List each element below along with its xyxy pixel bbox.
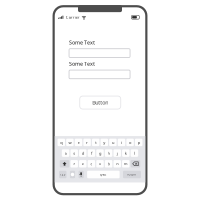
button[interactable]: b	[105, 160, 112, 168]
button[interactable]: Dictate	[78, 171, 84, 178]
button[interactable]: k	[122, 149, 130, 157]
staticText: r	[86, 140, 88, 145]
button[interactable]: w	[66, 139, 74, 146]
staticText: t	[95, 140, 96, 145]
button[interactable]: n	[113, 160, 121, 168]
staticText: l	[134, 150, 135, 156]
button[interactable]: t	[92, 139, 99, 146]
staticText: w	[68, 140, 71, 145]
button[interactable]: c	[88, 160, 95, 168]
button[interactable]: m	[122, 160, 130, 168]
staticText: x	[82, 161, 84, 166]
staticText: u	[112, 140, 114, 145]
staticText: o	[129, 140, 131, 145]
staticText: s	[73, 150, 75, 156]
staticText: y	[103, 140, 105, 145]
button[interactable]: i	[118, 139, 125, 146]
staticText: space	[100, 173, 107, 176]
staticText: d	[82, 150, 84, 156]
staticText: Carrier	[66, 15, 80, 20]
staticText: Some Text	[69, 39, 95, 46]
staticText: 123	[60, 173, 66, 176]
button[interactable]: d	[79, 149, 86, 157]
staticText: b	[108, 161, 110, 166]
button[interactable]: h	[105, 149, 112, 157]
staticText: k	[125, 150, 127, 156]
button[interactable]: f	[88, 149, 95, 157]
staticText: i	[121, 140, 122, 145]
button[interactable]: x	[79, 160, 86, 168]
staticText: return	[127, 173, 136, 176]
button[interactable]: e	[75, 139, 82, 146]
staticText: Button	[92, 99, 108, 106]
staticText: n	[116, 161, 118, 166]
staticText: c	[90, 161, 92, 166]
button[interactable]: space	[87, 171, 120, 178]
button[interactable]: u	[109, 139, 117, 146]
button[interactable]: Emoji	[70, 171, 75, 178]
button[interactable]: Button	[80, 96, 121, 109]
button[interactable]: o	[126, 139, 134, 146]
button[interactable]: p	[135, 139, 142, 146]
button[interactable]: z	[70, 160, 78, 168]
button[interactable]: j	[113, 149, 121, 157]
button[interactable]: q	[57, 139, 65, 146]
staticText: p	[138, 140, 140, 145]
button[interactable]: r	[83, 139, 91, 146]
button[interactable]: Delete	[131, 160, 140, 168]
button[interactable]: 123	[59, 171, 66, 178]
staticText: v	[99, 161, 101, 166]
button[interactable]: return	[123, 171, 141, 178]
button[interactable]: Shift	[60, 160, 69, 168]
button[interactable]: g	[96, 149, 104, 157]
staticText: g	[99, 150, 101, 156]
button[interactable]: y	[100, 139, 108, 146]
staticText: f	[91, 150, 92, 156]
staticText: Some Text	[69, 60, 95, 67]
staticText: j	[117, 150, 118, 156]
staticText: h	[108, 150, 110, 156]
button[interactable]: s	[70, 149, 78, 157]
staticText: a	[65, 150, 67, 156]
button[interactable]: a	[62, 149, 69, 157]
staticText: z	[73, 161, 75, 166]
staticText: e	[77, 140, 79, 145]
button[interactable]: v	[96, 160, 104, 168]
staticText: q	[60, 140, 62, 145]
button[interactable]: l	[131, 149, 138, 157]
staticText: m	[124, 161, 128, 166]
